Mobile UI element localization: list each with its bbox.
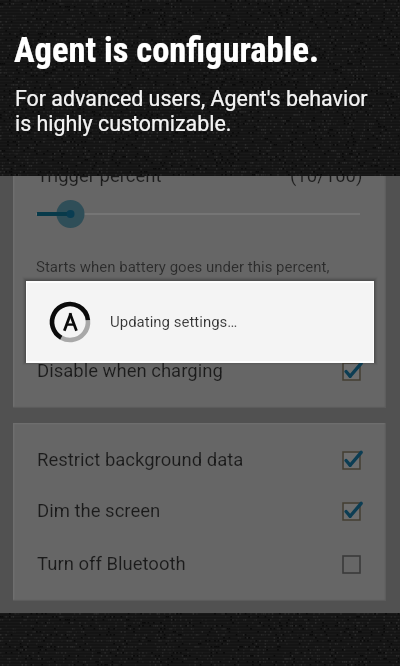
button[interactable]: Disable when charging [13, 348, 386, 392]
button[interactable]: Turn off Bluetooth [13, 541, 386, 585]
staticText: Updating settings… [110, 313, 238, 331]
button[interactable]: Updating settings… [26, 281, 374, 363]
staticText: Restrict background data [37, 449, 244, 471]
staticText: Dim the screen [37, 500, 161, 522]
staticText: Agent is configurable. [14, 30, 319, 70]
staticText: Starts when battery goes under this perc… [36, 258, 330, 276]
button[interactable]: Dim the screen [13, 488, 386, 532]
staticText: Turn off Bluetooth [37, 553, 186, 575]
staticText: For advanced users, Agent's behavior is … [15, 86, 368, 136]
staticText: (10/100) [290, 165, 363, 187]
button[interactable]: Restrict background data [13, 437, 386, 481]
staticText: Disable when charging [37, 360, 223, 382]
staticText: Trigger percent [37, 165, 162, 187]
